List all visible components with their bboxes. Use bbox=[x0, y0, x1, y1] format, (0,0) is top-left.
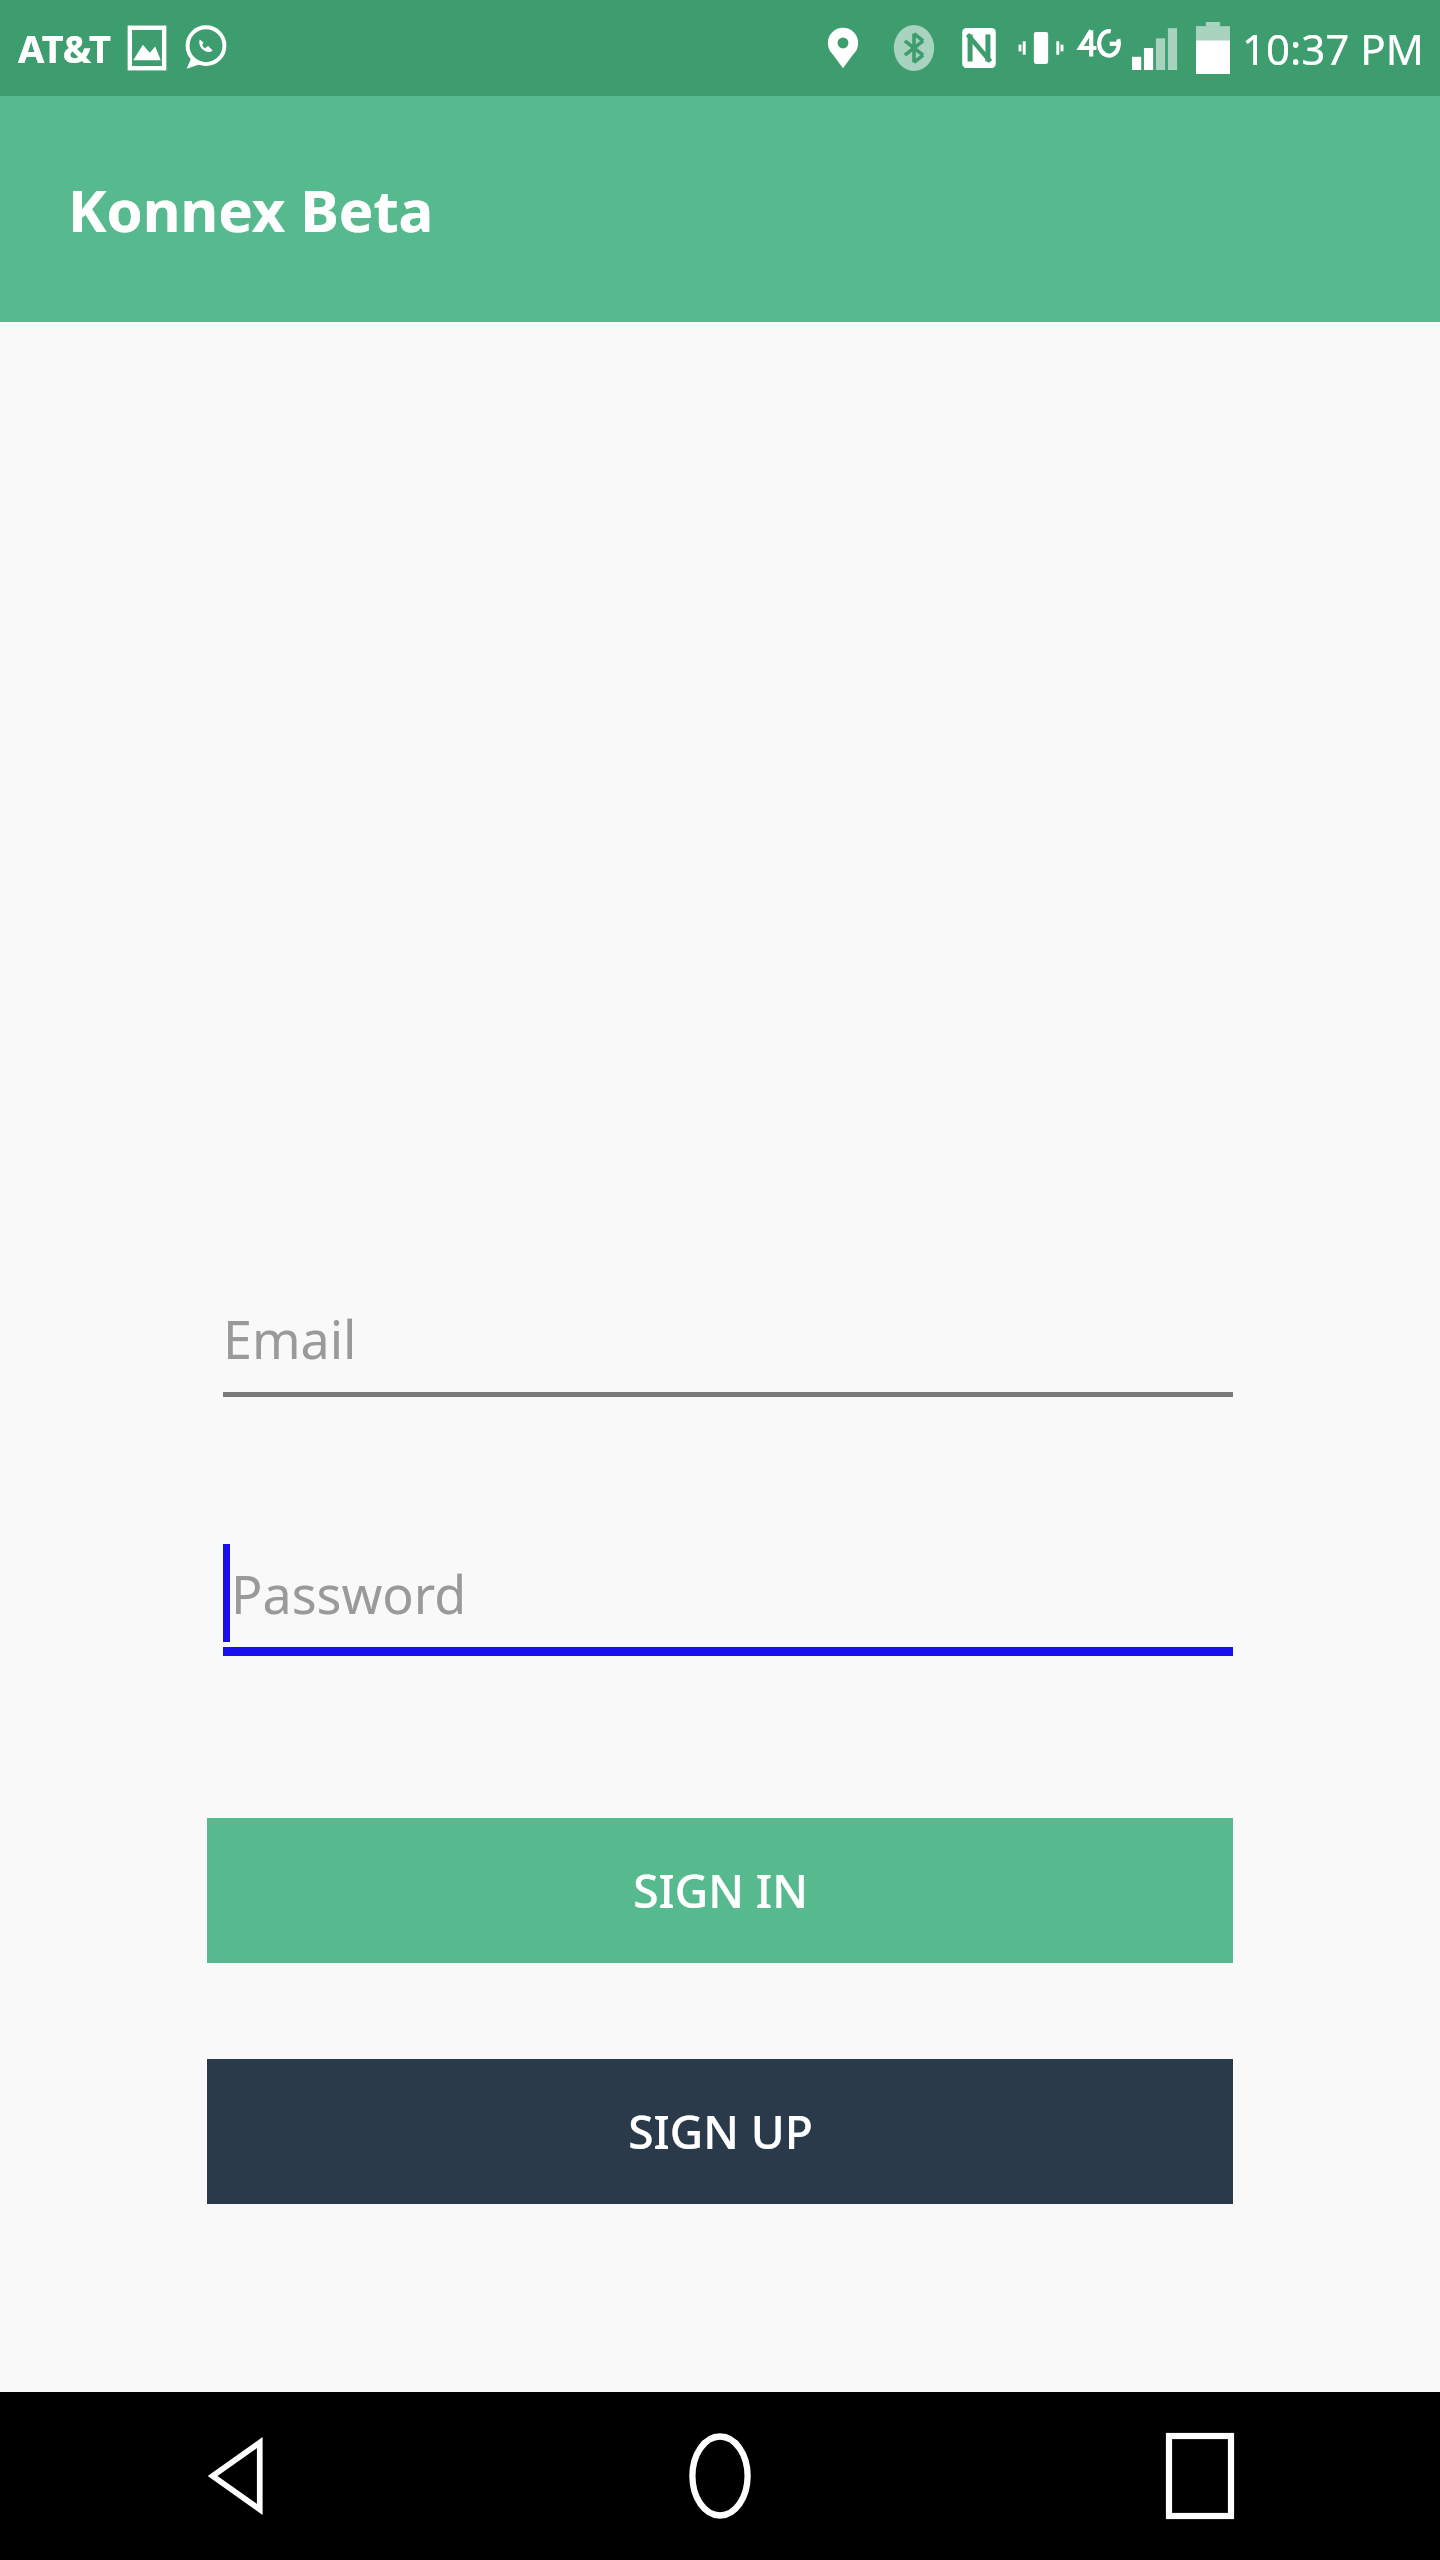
button[interactable]: SIGN IN bbox=[207, 1818, 1233, 1963]
staticText: SIGN IN bbox=[633, 1859, 808, 1922]
button[interactable]: Password bbox=[207, 1539, 1233, 1656]
staticText: Email bbox=[223, 1303, 357, 1374]
staticText: 10:37 PM bbox=[1242, 20, 1424, 77]
staticText: AT&T bbox=[18, 22, 111, 74]
staticText: SIGN UP bbox=[628, 2100, 813, 2163]
button[interactable]: Back bbox=[0, 2392, 480, 2560]
staticText: Password bbox=[231, 1558, 467, 1629]
button[interactable]: Recent apps bbox=[960, 2392, 1440, 2560]
button[interactable]: Home bbox=[480, 2392, 960, 2560]
button[interactable]: SIGN UP bbox=[207, 2059, 1233, 2204]
button[interactable]: Email bbox=[207, 1284, 1233, 1397]
staticText: Konnex Beta bbox=[68, 170, 434, 249]
